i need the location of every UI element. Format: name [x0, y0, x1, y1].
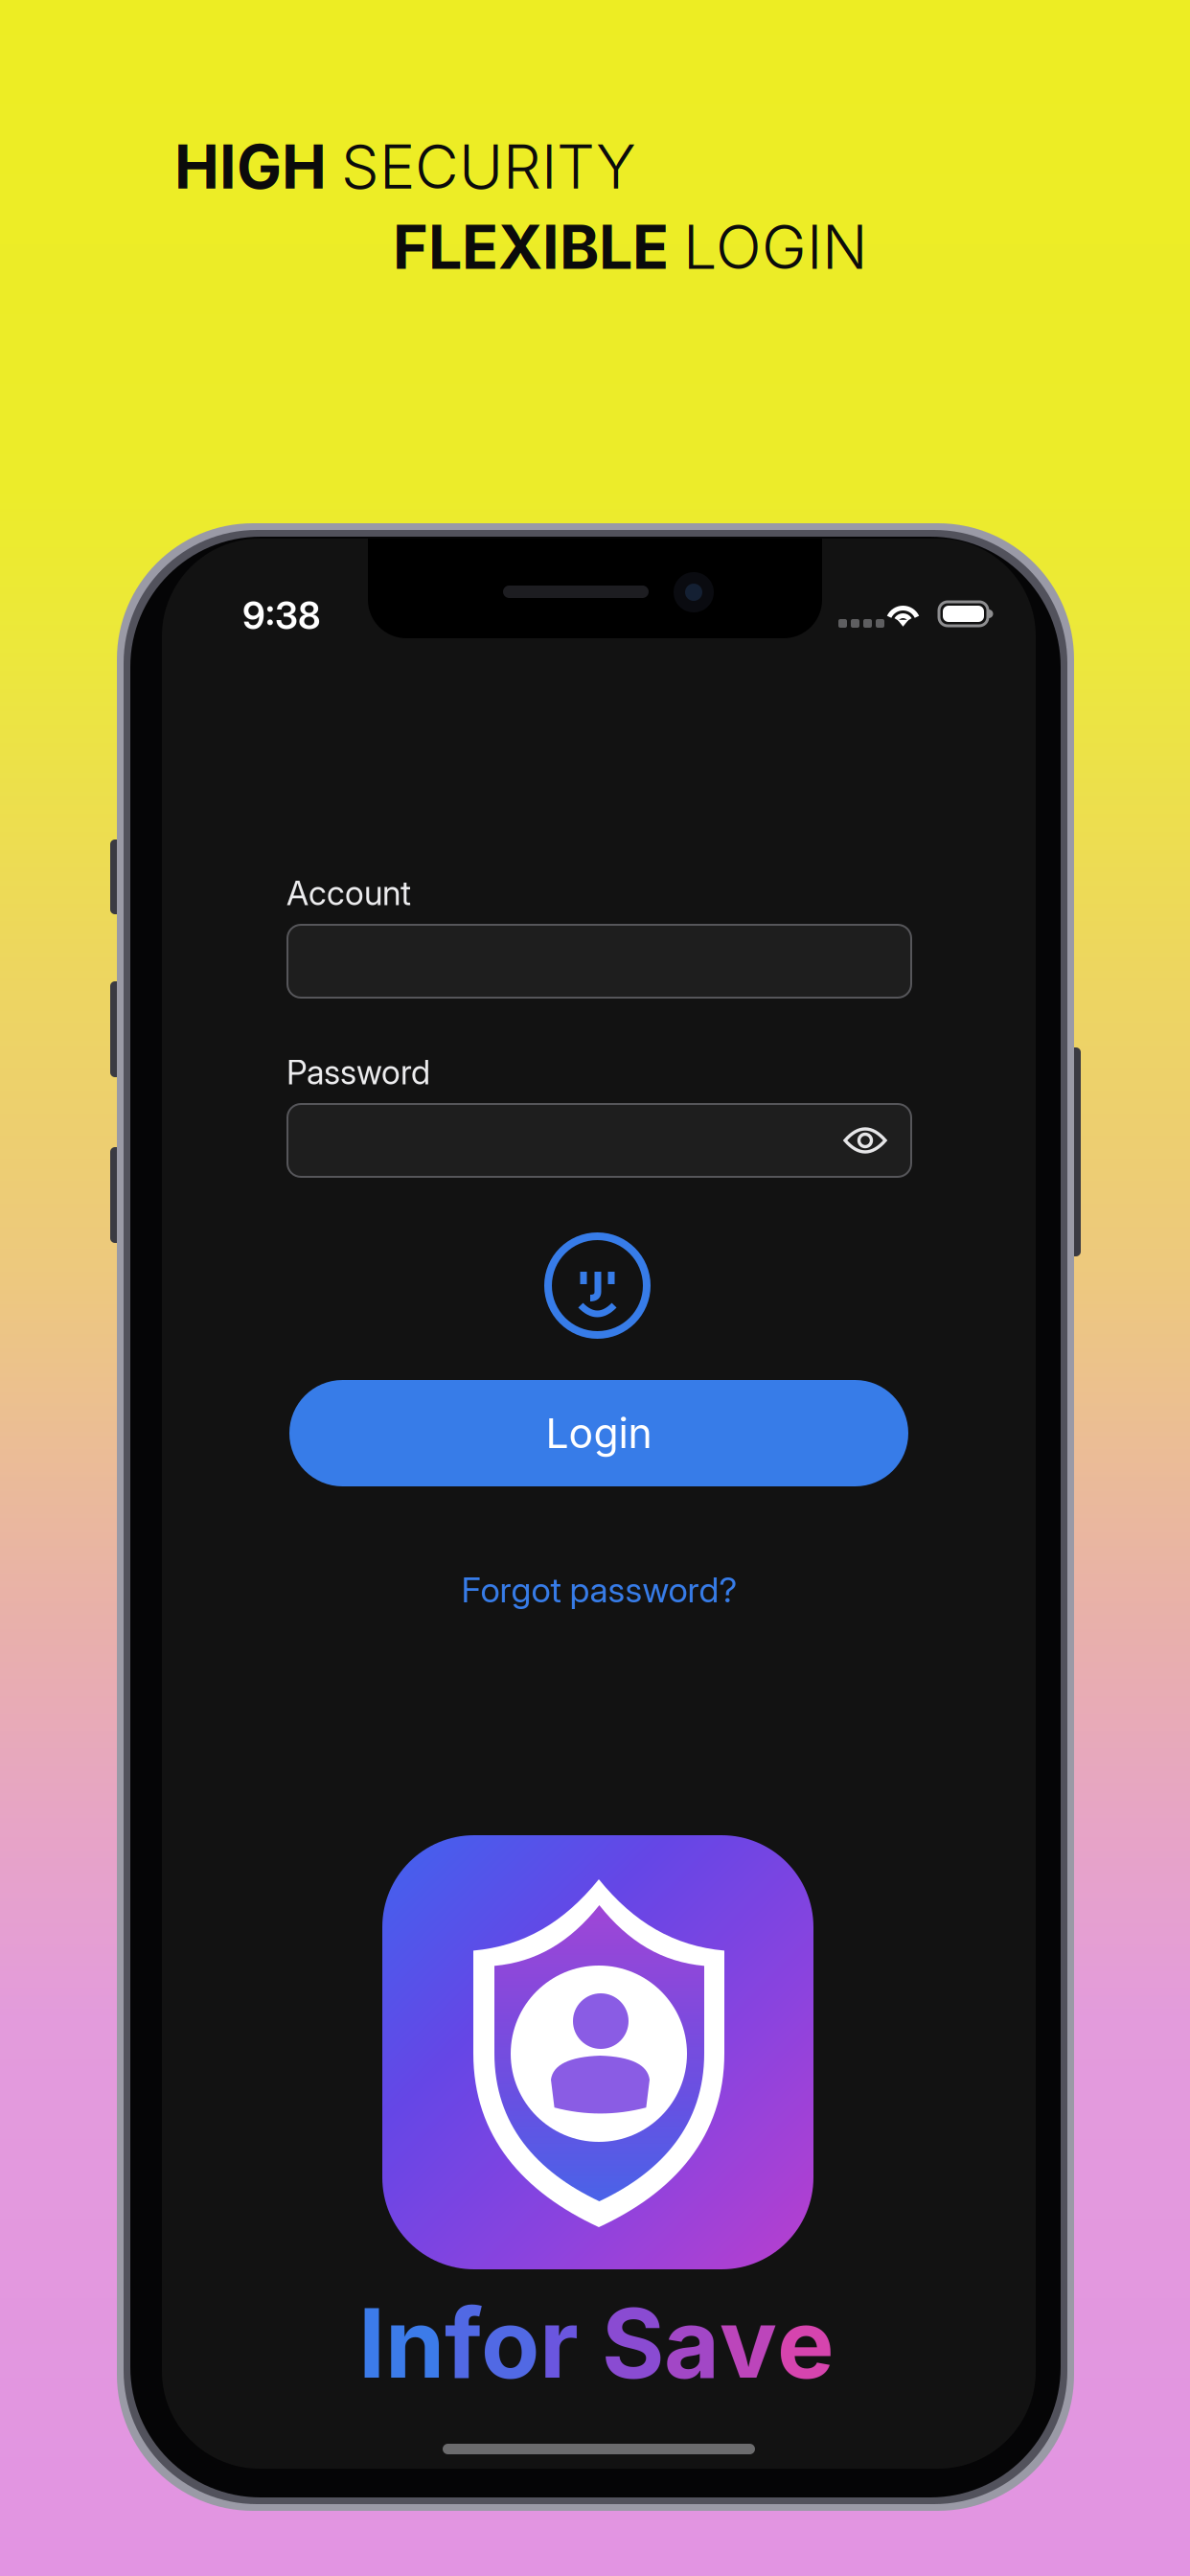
staticText: fo: [445, 2285, 539, 2401]
staticText: e: [777, 2285, 835, 2401]
button[interactable]: Login: [289, 1380, 908, 1486]
button[interactable]: Show password: [831, 1104, 900, 1177]
staticText: Forgot password?: [461, 1569, 737, 1611]
staticText: Password: [286, 1052, 430, 1092]
staticText: LOGIN: [683, 211, 868, 283]
staticText: FLEXIBLE: [393, 211, 683, 283]
staticText: r: [539, 2285, 602, 2401]
staticText: HIGH: [174, 130, 341, 203]
staticText: S: [602, 2285, 664, 2401]
staticText: Login: [546, 1408, 652, 1458]
button[interactable]: Forgot password?: [287, 1559, 911, 1621]
staticText: a: [664, 2285, 720, 2401]
staticText: v: [720, 2285, 777, 2401]
staticText: In: [358, 2285, 445, 2401]
button[interactable]: Account field: [287, 925, 911, 998]
staticText: 9:38: [242, 593, 321, 638]
staticText: SECURITY: [341, 130, 636, 203]
button[interactable]: Password field: [287, 1104, 911, 1177]
staticText: Account: [286, 873, 411, 913]
